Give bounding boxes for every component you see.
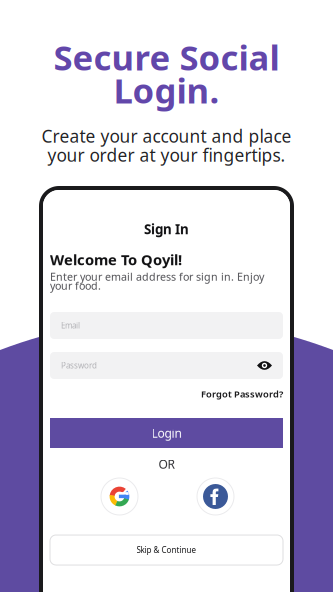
staticText: your food. bbox=[50, 278, 101, 293]
button[interactable]: Login bbox=[50, 418, 283, 448]
staticText: Sign In bbox=[144, 220, 189, 238]
button[interactable]: Continue with Facebook bbox=[197, 478, 234, 515]
staticText: Login. bbox=[113, 67, 219, 113]
button[interactable]: Continue with Google bbox=[101, 478, 138, 515]
staticText: your order at your fingertips. bbox=[47, 143, 285, 166]
button[interactable]: Forgot Password? bbox=[194, 386, 290, 402]
staticText: Email bbox=[61, 320, 80, 331]
staticText: Create your account and place bbox=[41, 124, 291, 147]
staticText: Forgot Password? bbox=[201, 388, 283, 400]
staticText: Enter your email address for sign in. En… bbox=[50, 269, 264, 284]
button[interactable]: Skip & Continue bbox=[50, 535, 283, 565]
staticText: Password bbox=[61, 360, 97, 371]
staticText: Skip & Continue bbox=[136, 545, 196, 555]
staticText: OR bbox=[158, 456, 174, 472]
staticText: Secure Social bbox=[53, 34, 279, 80]
staticText: Welcome To Qoyil! bbox=[50, 250, 182, 269]
staticText: Login bbox=[151, 425, 181, 441]
